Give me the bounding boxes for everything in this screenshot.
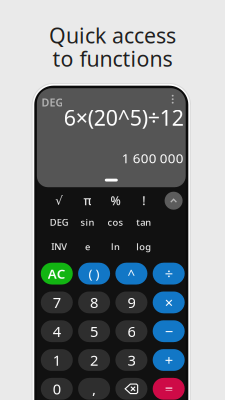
staticText: DEG — [50, 216, 69, 228]
staticText: 7 — [53, 293, 61, 312]
staticText: log — [136, 240, 151, 253]
staticText: ^ — [127, 265, 135, 282]
staticText: 9 — [127, 293, 135, 312]
staticText: ÷ — [165, 264, 173, 283]
button[interactable]: sin — [73, 215, 102, 229]
button[interactable]: ^ — [115, 263, 147, 284]
button[interactable]: INV — [45, 240, 73, 254]
staticText: , — [92, 379, 96, 399]
button[interactable] — [115, 378, 147, 400]
button[interactable]: 9 — [115, 291, 147, 313]
staticText: 8 — [90, 293, 98, 312]
staticText: 2 — [90, 350, 98, 370]
staticText: ! — [142, 193, 145, 209]
staticText: 0 — [53, 379, 61, 399]
button[interactable]: DEG — [45, 215, 73, 229]
button[interactable]: Delete — [115, 378, 147, 400]
staticText: AC — [48, 265, 66, 282]
staticText: = — [165, 379, 173, 399]
staticText: e — [85, 240, 90, 253]
staticText: % — [111, 193, 121, 209]
button[interactable]: 6 — [115, 320, 147, 342]
staticText: 4 — [53, 321, 61, 341]
button[interactable]: Collapse function panel — [164, 192, 183, 210]
button[interactable]: 0 — [41, 378, 73, 400]
staticText: 1 — [53, 350, 61, 370]
staticText: √ — [55, 194, 63, 207]
staticText: × — [165, 293, 173, 312]
button[interactable]: π — [73, 194, 102, 208]
staticText: 1 600 000 — [122, 149, 184, 167]
button[interactable]: √ — [45, 194, 73, 208]
staticText: 3 — [127, 350, 135, 370]
button[interactable]: tan — [129, 215, 158, 229]
button[interactable]: = — [153, 378, 185, 400]
button[interactable]: ( ) — [78, 263, 110, 284]
staticText: INV — [51, 240, 67, 253]
staticText: to functions — [52, 44, 172, 73]
button[interactable]: − — [153, 320, 185, 342]
button[interactable]: AC — [41, 263, 73, 284]
staticText: 6×(20^5)÷12 — [64, 103, 184, 131]
button[interactable]: 8 — [78, 291, 110, 313]
button[interactable]: + — [153, 349, 185, 371]
button[interactable]: 3 — [115, 349, 147, 371]
button[interactable]: 7 — [41, 291, 73, 313]
button[interactable]: cos — [101, 215, 130, 229]
staticText: 5 — [90, 321, 98, 341]
staticText: π — [83, 193, 91, 209]
button[interactable]: × — [153, 291, 185, 313]
button[interactable]: % — [101, 194, 130, 208]
staticText: cos — [108, 216, 124, 228]
staticText: ( ) — [89, 265, 100, 282]
staticText: 6 — [127, 321, 135, 341]
button[interactable]: 2 — [78, 349, 110, 371]
staticText: tan — [136, 216, 151, 228]
staticText: + — [165, 350, 173, 370]
button[interactable]: More options — [166, 91, 180, 107]
button[interactable]: , — [78, 378, 110, 400]
button[interactable]: ! — [129, 194, 158, 208]
staticText: sin — [80, 216, 94, 228]
button[interactable]: 1 — [41, 349, 73, 371]
button[interactable]: ln — [101, 240, 130, 254]
staticText: − — [165, 321, 173, 341]
button[interactable]: log — [129, 240, 158, 254]
staticText: DEG — [41, 95, 63, 109]
button[interactable]: ÷ — [153, 263, 185, 284]
staticText: Quick access — [49, 21, 176, 49]
button[interactable]: e — [73, 240, 102, 254]
button[interactable]: 5 — [78, 320, 110, 342]
button[interactable]: 4 — [41, 320, 73, 342]
staticText: ln — [111, 240, 120, 253]
